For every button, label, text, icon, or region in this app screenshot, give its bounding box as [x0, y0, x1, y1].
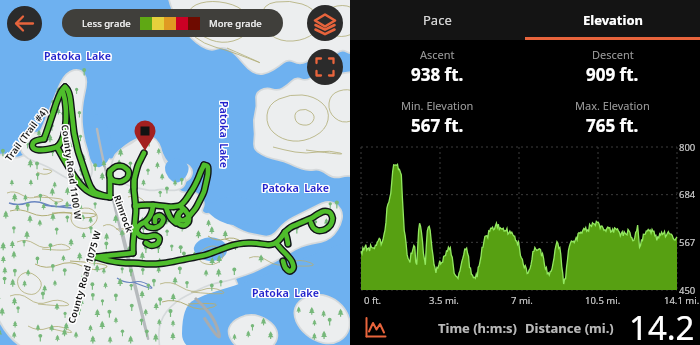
staticText: Patoka Lake — [44, 50, 112, 64]
staticText: County Road 1100 W — [58, 123, 85, 220]
staticText: County Road 1075 W — [64, 227, 103, 324]
staticText: Patoka Lake — [261, 181, 329, 195]
staticText: 765 ft. — [586, 114, 639, 137]
staticText: Trail (Trail #4) — [2, 105, 51, 164]
staticText: Patoka Lake — [45, 49, 113, 63]
staticText: Patoka Lake — [217, 102, 231, 170]
staticText: Patoka Lake — [218, 100, 232, 168]
staticText: Patoka Lake — [263, 182, 331, 196]
staticText: 7 mi. — [511, 294, 533, 307]
staticText: Patoka Lake — [253, 286, 321, 300]
staticText: Trail (Trail #4) — [3, 105, 52, 164]
staticText: County Road 1100 W — [57, 124, 84, 222]
staticText: Patoka Lake — [45, 48, 113, 62]
staticText: Patoka Lake — [251, 286, 319, 300]
staticText: Rimrock — [112, 194, 138, 236]
staticText: County Road 1075 W — [65, 228, 104, 325]
staticText: Descent — [592, 47, 634, 62]
staticText: Patoka Lake — [262, 180, 330, 194]
staticText: County Road 1075 W — [66, 228, 105, 324]
staticText: Min. Elevation — [401, 98, 474, 113]
staticText: Patoka Lake — [253, 285, 321, 299]
staticText: Patoka Lake — [262, 182, 330, 196]
staticText: County Road 1100 W — [59, 124, 86, 222]
staticText: Patoka Lake — [262, 181, 330, 195]
staticText: Distance (mi.) — [525, 319, 614, 337]
staticText: 684 — [679, 188, 696, 201]
staticText: Rimrock — [111, 193, 137, 235]
staticText: Patoka Lake — [217, 100, 231, 168]
staticText: Patoka Lake — [45, 50, 113, 64]
staticText: Patoka Lake — [216, 100, 230, 168]
staticText: Patoka Lake — [261, 180, 329, 194]
staticText: Patoka Lake — [43, 48, 111, 62]
staticText: County Road 1075 W — [65, 227, 104, 324]
staticText: Trail (Trail #4) — [1, 104, 50, 163]
staticText: Time (h:m:s) — [438, 319, 517, 337]
staticText: Rimrock — [111, 192, 137, 234]
staticText: County Road 1075 W — [64, 229, 103, 326]
staticText: County Road 1075 W — [66, 228, 105, 325]
staticText: 800 — [679, 141, 696, 154]
staticText: County Road 1100 W — [57, 125, 84, 223]
staticText: Trail (Trail #4) — [2, 106, 51, 165]
staticText: Trail (Trail #4) — [3, 105, 52, 163]
staticText: Trail (Trail #4) — [3, 104, 51, 163]
button[interactable]: Elevation — [525, 0, 700, 40]
staticText: Patoka Lake — [252, 287, 320, 301]
button[interactable]: Map layers — [307, 5, 343, 41]
staticText: Rimrock — [110, 194, 136, 236]
staticText: County Road 1100 W — [59, 122, 86, 220]
staticText: Trail (Trail #4) — [0, 105, 49, 164]
staticText: Patoka Lake — [218, 101, 232, 169]
staticText: Pace — [423, 11, 452, 29]
staticText: Ascent — [420, 47, 455, 62]
staticText: Rimrock — [109, 193, 135, 235]
staticText: 909 ft. — [586, 63, 639, 86]
staticText: 450 — [679, 284, 696, 297]
staticText: 3.5 mi. — [429, 294, 459, 307]
staticText: County Road 1100 W — [59, 123, 86, 221]
staticText: Max. Elevation — [575, 98, 650, 113]
staticText: County Road 1075 W — [64, 228, 103, 325]
staticText: Patoka Lake — [43, 50, 111, 64]
staticText: 14.2 — [629, 305, 695, 345]
staticText: Patoka Lake — [44, 48, 112, 62]
staticText: Patoka Lake — [251, 285, 319, 299]
staticText: 567 — [679, 236, 696, 249]
staticText: Patoka Lake — [44, 49, 112, 63]
staticText: 14.1 mi. — [664, 294, 700, 307]
staticText: Elevation — [583, 11, 643, 29]
button[interactable]: Chart type — [365, 317, 387, 339]
staticText: Rimrock — [111, 193, 136, 235]
staticText: Patoka Lake — [253, 287, 321, 301]
staticText: Patoka Lake — [216, 101, 230, 169]
staticText: Patoka Lake — [263, 181, 331, 195]
staticText: Patoka Lake — [261, 182, 329, 196]
staticText: Trail (Trail #4) — [1, 106, 50, 164]
staticText: 938 ft. — [411, 63, 464, 86]
button[interactable]: Less grade — [62, 9, 283, 37]
staticText: More grade — [209, 17, 262, 30]
staticText: Patoka Lake — [218, 102, 232, 170]
staticText: County Road 1100 W — [58, 124, 85, 221]
staticText: Less grade — [82, 17, 131, 30]
staticText: Patoka Lake — [251, 287, 319, 301]
staticText: Rimrock — [111, 194, 137, 236]
staticText: County Road 1075 W — [66, 229, 105, 326]
button[interactable]: Pace — [350, 0, 525, 40]
staticText: Rimrock — [110, 193, 135, 235]
button[interactable]: Back — [7, 6, 42, 41]
staticText: County Road 1075 W — [65, 229, 104, 326]
staticText: 0 ft. — [364, 294, 382, 307]
staticText: Patoka Lake — [263, 180, 331, 194]
staticText: Patoka Lake — [252, 286, 320, 300]
button[interactable]: Fullscreen — [307, 49, 343, 85]
staticText: Patoka Lake — [216, 102, 230, 170]
staticText: Trail (Trail #4) — [2, 103, 51, 162]
staticText: 567 ft. — [411, 114, 464, 137]
staticText: 10.5 mi. — [585, 294, 621, 307]
staticText: Patoka Lake — [252, 285, 320, 299]
staticText: Patoka Lake — [43, 49, 111, 63]
staticText: Rimrock — [110, 192, 136, 234]
